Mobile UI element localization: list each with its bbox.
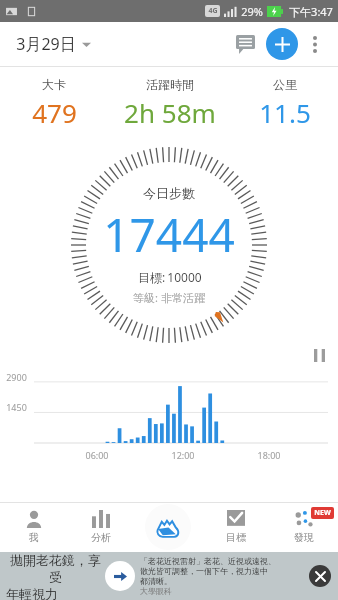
staticText: 479	[32, 95, 77, 130]
staticText: 今日步數	[143, 185, 195, 201]
staticText: 等級: 非常活躍	[133, 290, 205, 305]
button[interactable]: Steps	[145, 504, 191, 550]
staticText: 2h 58m	[124, 95, 216, 130]
staticText: 分析	[91, 531, 111, 544]
staticText: 4G	[208, 6, 218, 16]
staticText: 「老花近視雷射」老花、近視或遠視、	[140, 556, 276, 566]
staticText: 17444	[103, 203, 235, 266]
staticText: 06:00	[85, 449, 109, 461]
staticText: 3月29日	[16, 33, 76, 55]
staticText: 都清晰。	[140, 576, 172, 586]
staticText: 下午3:47	[289, 4, 333, 19]
staticText: 11.5	[259, 95, 311, 130]
staticText: 目標	[226, 531, 246, 544]
staticText: 12:00	[171, 449, 195, 461]
staticText: 散光皆可調整，一個下午，視力遠中	[140, 566, 268, 576]
staticText: 大學眼科	[140, 586, 172, 596]
button[interactable]: More options	[300, 29, 330, 59]
button[interactable]: Messages	[228, 27, 262, 61]
staticText: 發現	[294, 531, 314, 544]
button[interactable]: 目標	[202, 502, 270, 552]
staticText: 活躍時間	[146, 77, 194, 92]
staticText: 我	[29, 531, 39, 544]
button[interactable]: 公里	[231, 67, 338, 139]
button[interactable]: 分析	[67, 502, 134, 552]
button[interactable]: 發現	[270, 502, 338, 552]
button[interactable]: Dismiss	[309, 565, 331, 587]
staticText: 拋開老花鏡，享受	[6, 552, 105, 586]
button[interactable]: 活躍時間	[108, 67, 231, 139]
button[interactable]: 大卡	[0, 67, 108, 139]
button[interactable]: 今日步數	[103, 185, 235, 305]
staticText: 1450	[6, 401, 27, 413]
staticText: 18:00	[257, 449, 281, 461]
staticText: NEW	[314, 508, 331, 518]
staticText: 29%	[241, 4, 263, 19]
staticText: 公里	[273, 77, 297, 92]
staticText: 年輕視力	[6, 586, 58, 600]
button[interactable]: Pause	[306, 345, 332, 365]
button[interactable]: Close ad	[304, 559, 338, 593]
staticText: 2900	[6, 371, 27, 383]
staticText: 10000	[167, 269, 202, 285]
staticText: 目標:	[136, 269, 167, 285]
button[interactable]: Add	[266, 28, 298, 60]
button[interactable]: Open ad	[105, 561, 135, 591]
button[interactable]: 我	[0, 502, 67, 552]
staticText: 大卡	[42, 77, 66, 92]
button[interactable]: 3月29日	[14, 27, 93, 61]
